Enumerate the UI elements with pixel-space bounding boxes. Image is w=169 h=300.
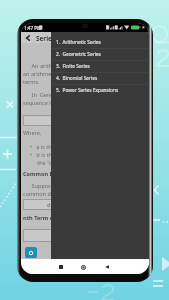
staticText: Where, xyxy=(23,129,42,136)
button[interactable]: 1. Arithmetic Series xyxy=(51,36,149,48)
button[interactable]: 4. Binomial Series xyxy=(51,72,149,84)
staticText: 1:47 PM xyxy=(24,25,42,31)
button[interactable]: 3. Finite Series xyxy=(51,60,149,72)
staticText: Series xyxy=(36,34,56,43)
staticText: • a is the first term • d is the differe… xyxy=(30,143,133,167)
button[interactable]: Home xyxy=(77,261,89,273)
staticText: Suppose that the given sequence has a co… xyxy=(23,182,133,198)
staticText: 2. Geometric Series xyxy=(56,51,101,58)
staticText: 4. Binomial Series xyxy=(56,75,98,82)
staticText: 1. Arithmetic Series xyxy=(56,39,101,46)
staticText: nth Term of the Sequence xyxy=(23,214,95,222)
button[interactable]: Calculate xyxy=(25,247,37,258)
button[interactable]: Recents xyxy=(55,261,67,273)
button[interactable]: Back xyxy=(101,261,113,273)
staticText: An arithmetic series is the sum of the t… xyxy=(23,62,149,86)
staticText: 5. Power Series Expansions xyxy=(56,87,119,94)
button[interactable]: 2. Geometric Series xyxy=(51,48,149,60)
staticText: In General, we can define an arithmetic … xyxy=(23,91,142,107)
staticText: 3. Finite Series xyxy=(56,63,90,70)
button[interactable]: 5. Power Series Expansions xyxy=(51,84,149,96)
staticText: Common Difference xyxy=(23,170,79,178)
button[interactable]: Back xyxy=(22,32,34,43)
staticText: d = a₂ - a₁ xyxy=(47,201,72,208)
